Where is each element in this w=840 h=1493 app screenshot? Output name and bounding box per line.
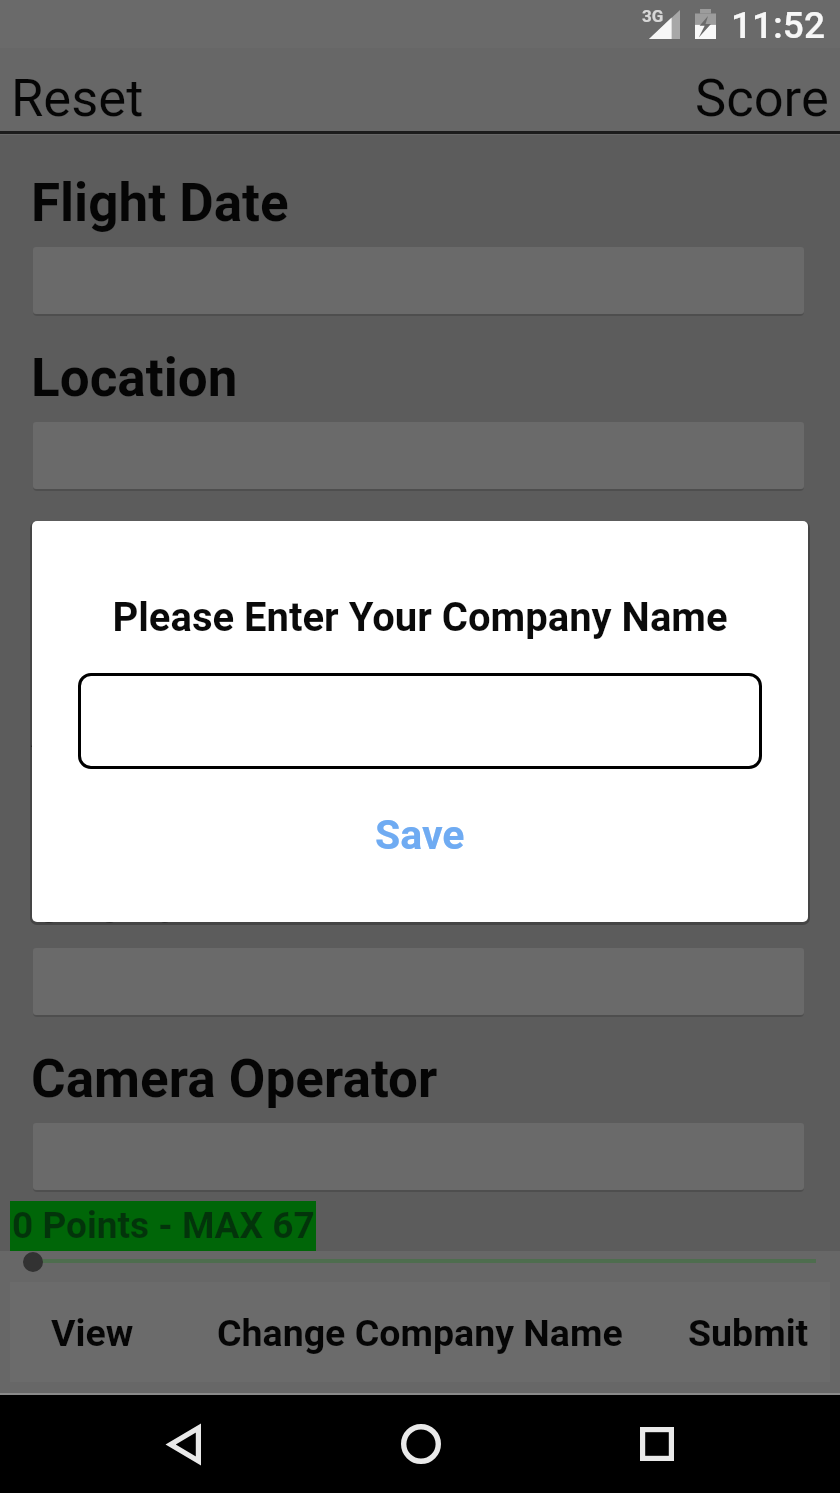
button[interactable] xyxy=(33,773,804,840)
staticText: Client xyxy=(31,873,171,935)
staticText: 11:52 xyxy=(731,4,825,47)
staticText: 3G xyxy=(642,6,664,26)
staticText: Reset xyxy=(11,67,144,129)
staticText: Change Company Name xyxy=(217,1311,623,1355)
button[interactable]: Reset xyxy=(0,48,280,131)
button[interactable] xyxy=(23,1252,43,1272)
staticText: Submit xyxy=(688,1311,809,1355)
button[interactable] xyxy=(33,597,804,664)
button[interactable]: Submit xyxy=(666,1282,830,1383)
button[interactable]: Back xyxy=(136,1396,232,1492)
staticText: Pilot xyxy=(31,522,142,584)
staticText: 0 Points - MAX 67 xyxy=(12,1204,315,1247)
staticText: Aircraft xyxy=(31,698,212,760)
staticText: Camera Operator xyxy=(31,1048,438,1110)
staticText: Flight Date xyxy=(31,172,289,234)
staticText: Location xyxy=(31,347,238,409)
button[interactable]: Change Company Name xyxy=(174,1282,666,1383)
button[interactable]: Client xyxy=(31,873,631,939)
staticText: Save xyxy=(375,811,465,859)
button[interactable]: Recent apps xyxy=(609,1396,705,1492)
button[interactable]: Flight Date xyxy=(31,172,631,238)
button[interactable]: Camera Operator xyxy=(31,1048,631,1114)
button[interactable]: Score xyxy=(560,48,840,131)
staticText: Score xyxy=(695,67,829,129)
staticText: Please Enter Your Company Name xyxy=(32,594,808,641)
button[interactable]: Aircraft xyxy=(31,698,631,764)
button[interactable]: Home xyxy=(373,1396,469,1492)
button[interactable]: Location xyxy=(31,347,631,413)
staticText: View xyxy=(51,1311,134,1355)
button[interactable]: View xyxy=(10,1282,174,1383)
button[interactable] xyxy=(78,673,762,769)
button[interactable]: Save xyxy=(325,798,515,872)
button[interactable]: Pilot xyxy=(31,522,631,588)
